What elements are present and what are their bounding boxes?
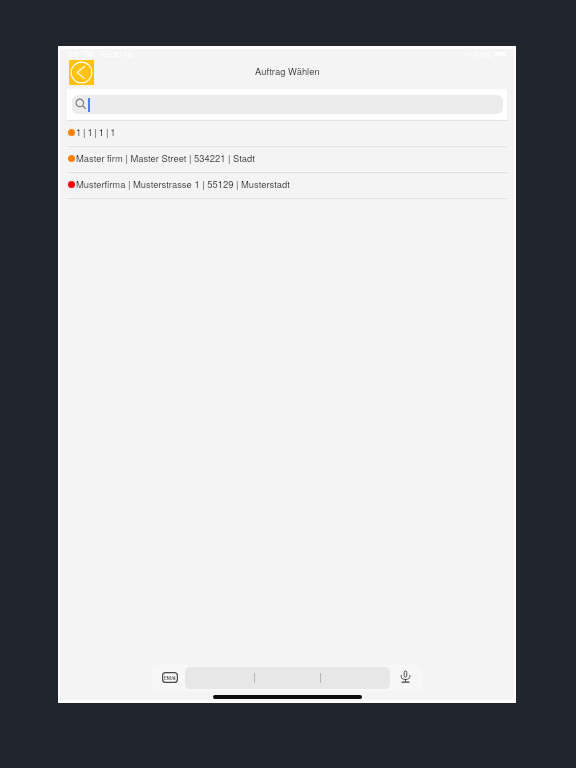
button[interactable]: 1 | 1 | 1 | 1 (67, 121, 507, 145)
staticText: Musterfirma | Musterstrasse 1 | 55129 | … (76, 177, 290, 190)
button[interactable] (185, 667, 390, 689)
button[interactable]: Keyboard language (162, 672, 178, 683)
staticText: Auftrag Wählen (255, 64, 320, 77)
button[interactable]: Back (69, 60, 94, 85)
button[interactable] (72, 95, 503, 114)
button[interactable]: Master firm | Master Street | 534221 | S… (67, 147, 507, 171)
button[interactable]: Musterfirma | Musterstrasse 1 | 55129 | … (67, 173, 507, 197)
staticText: ENUS (164, 675, 176, 681)
staticText: Master firm | Master Street | 534221 | S… (76, 151, 255, 164)
button[interactable]: Dictate (398, 670, 413, 685)
staticText: 1 | 1 | 1 | 1 (76, 125, 116, 138)
